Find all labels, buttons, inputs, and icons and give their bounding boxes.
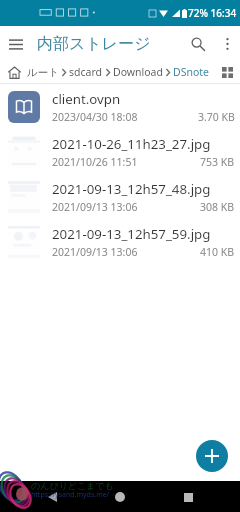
button[interactable]: 2021-09-13_12h57_48.jpg — [0, 174, 240, 219]
staticText: 2021/09/13 13:06 — [52, 200, 138, 214]
button[interactable]: Search — [182, 28, 214, 60]
staticText: 72% 16:34 — [188, 6, 237, 20]
staticText: 2021-09-13_12h57_59.jpg — [52, 225, 211, 243]
staticText: 2021-09-13_12h57_48.jpg — [52, 180, 211, 198]
button[interactable]: 2021-10-26_11h23_27.jpg — [0, 129, 240, 174]
staticText: client.ovpn — [52, 90, 121, 108]
button[interactable]: Home — [108, 485, 132, 509]
staticText: のんびりどこまでも — [31, 480, 114, 491]
button[interactable]: Root — [5, 63, 23, 81]
button[interactable]: Add — [196, 440, 228, 472]
button[interactable]: Recents — [176, 485, 200, 509]
button[interactable]: Download — [113, 65, 163, 79]
button[interactable]: ルート — [27, 66, 59, 79]
staticText: 308 KB — [200, 200, 235, 214]
staticText: https://ysand.myds.me/ — [31, 490, 110, 500]
staticText: 内部ストレージ — [37, 34, 151, 54]
button[interactable]: client.ovpn — [0, 84, 240, 129]
staticText: 2023/04/30 18:08 — [52, 110, 138, 124]
button[interactable]: DSnote — [173, 65, 209, 79]
button[interactable]: More options — [214, 31, 240, 57]
staticText: 2021-10-26_11h23_27.jpg — [52, 135, 211, 153]
staticText: 2021/09/13 13:06 — [52, 245, 138, 259]
button[interactable]: Grid view — [219, 64, 235, 80]
button[interactable]: 2021-09-13_12h57_59.jpg — [0, 219, 240, 264]
button[interactable]: Back — [40, 485, 64, 509]
button[interactable]: sdcard — [69, 65, 103, 79]
staticText: 2021/10/26 11:51 — [52, 155, 138, 169]
staticText: 3.70 KB — [198, 110, 235, 124]
staticText: 753 KB — [200, 155, 235, 169]
button[interactable]: Menu — [0, 28, 32, 60]
staticText: 410 KB — [200, 245, 235, 259]
